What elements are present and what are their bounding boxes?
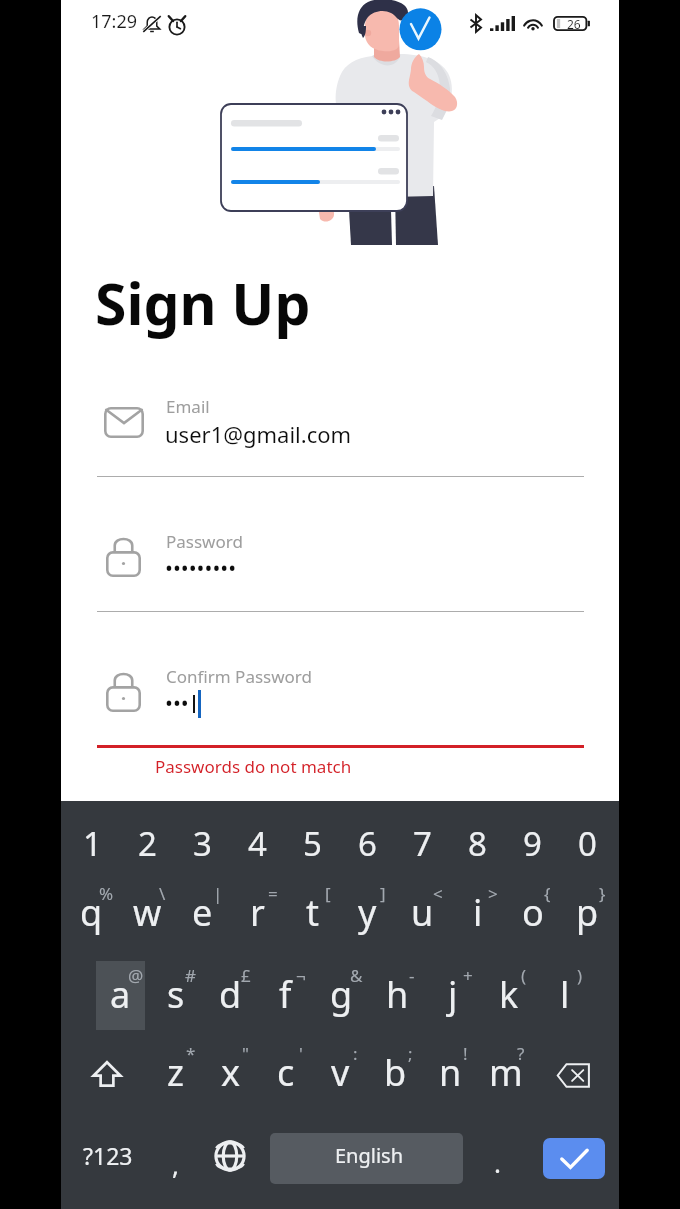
staticText: 1 [83, 821, 102, 866]
staticText: £ [241, 964, 251, 987]
button[interactable]: . [469, 1126, 525, 1191]
button[interactable]: 9 [505, 808, 560, 877]
staticText: > [488, 882, 498, 905]
button[interactable]: # [148, 961, 203, 1030]
button[interactable]: ?123 [61, 1126, 149, 1191]
staticText: 0 [578, 821, 597, 866]
button[interactable]: " [203, 1050, 258, 1119]
staticText: 5 [303, 821, 322, 866]
button[interactable]: Confirm Password [61, 662, 619, 751]
staticText: Password [166, 530, 243, 553]
staticText: | [213, 882, 223, 905]
button[interactable]: % [63, 889, 119, 958]
button[interactable]: 7 [395, 808, 450, 877]
staticText: ••• [165, 689, 189, 718]
button[interactable]: @ [93, 961, 148, 1030]
staticText: user1@gmail.com [165, 419, 352, 449]
staticText: p [576, 888, 599, 937]
staticText: 6 [358, 821, 377, 866]
staticText: y [358, 888, 377, 937]
staticText: & [350, 964, 363, 987]
button[interactable]: } [560, 889, 615, 958]
button[interactable]: ' [258, 1050, 313, 1119]
staticText: 3 [193, 821, 212, 866]
button[interactable]: 6 [340, 808, 395, 877]
staticText: , [172, 1147, 179, 1182]
button[interactable]: ) [537, 961, 593, 1030]
staticText: v [331, 1048, 350, 1097]
staticText: \ [159, 882, 166, 905]
staticText: 17:29 [91, 9, 138, 34]
staticText: ?123 [83, 1140, 133, 1171]
staticText: Passwords do not match [155, 755, 352, 778]
staticText: 2 [138, 821, 157, 866]
staticText: b [384, 1048, 407, 1097]
button[interactable]: + [425, 961, 481, 1030]
button[interactable]: Change keyboard language [205, 1126, 261, 1191]
button[interactable]: ! [423, 1050, 478, 1119]
staticText: - [409, 964, 415, 987]
staticText: 8 [468, 821, 487, 866]
button[interactable]: ¬ [258, 961, 313, 1030]
button[interactable]: 5 [285, 808, 340, 877]
staticText: m [489, 1048, 523, 1097]
button[interactable]: Email [61, 392, 619, 482]
button[interactable]: > [450, 889, 505, 958]
staticText: r [250, 888, 265, 937]
button[interactable]: : [313, 1050, 368, 1119]
button[interactable]: - [369, 961, 425, 1030]
staticText: x [221, 1048, 241, 1097]
button[interactable]: ( [481, 961, 537, 1030]
staticText: # [185, 964, 196, 987]
button[interactable]: | [175, 889, 230, 958]
staticText: l [560, 970, 570, 1019]
staticText: 9 [523, 821, 542, 866]
button[interactable]: \ [119, 889, 175, 958]
button[interactable]: Enter [543, 1138, 605, 1179]
button[interactable]: ? [478, 1050, 533, 1119]
staticText: ••••••••• [165, 554, 237, 583]
button[interactable]: 2 [120, 808, 175, 877]
staticText: { [544, 882, 551, 905]
staticText: u [411, 888, 434, 937]
staticText: z [167, 1048, 184, 1097]
button[interactable]: 3 [175, 808, 230, 877]
button[interactable]: { [505, 889, 560, 958]
staticText: " [242, 1042, 249, 1065]
button[interactable]: 4 [230, 808, 285, 877]
button[interactable]: 0 [560, 808, 615, 877]
button[interactable]: ] [340, 889, 395, 958]
button[interactable]: [ [285, 889, 340, 958]
staticText: o [522, 888, 544, 937]
staticText: } [599, 882, 606, 905]
button[interactable]: English [270, 1133, 463, 1184]
button[interactable]: , [149, 1126, 205, 1191]
button[interactable]: = [230, 889, 285, 958]
staticText: * [186, 1042, 196, 1065]
staticText: s [167, 970, 185, 1019]
staticText: q [80, 888, 103, 937]
button[interactable]: 8 [450, 808, 505, 877]
button[interactable]: & [313, 961, 369, 1030]
staticText: 7 [413, 821, 432, 866]
staticText: ( [521, 964, 527, 987]
staticText: t [306, 888, 319, 937]
button[interactable]: Shift [61, 1050, 148, 1119]
button[interactable]: Password [61, 527, 619, 617]
staticText: j [448, 970, 458, 1019]
button[interactable]: * [148, 1050, 203, 1119]
button[interactable]: < [395, 889, 450, 958]
staticText: Confirm Password [166, 665, 312, 688]
staticText: ) [577, 964, 583, 987]
button[interactable]: 1 [65, 808, 120, 877]
staticText: ! [463, 1042, 468, 1065]
staticText: c [277, 1048, 295, 1097]
button[interactable]: Backspace [533, 1050, 619, 1119]
staticText: English [335, 1142, 404, 1169]
button[interactable]: £ [203, 961, 258, 1030]
staticText: ¬ [296, 964, 306, 987]
staticText: Sign Up [95, 264, 311, 342]
button[interactable]: ; [368, 1050, 423, 1119]
staticText: e [192, 888, 213, 937]
staticText: d [219, 970, 242, 1019]
